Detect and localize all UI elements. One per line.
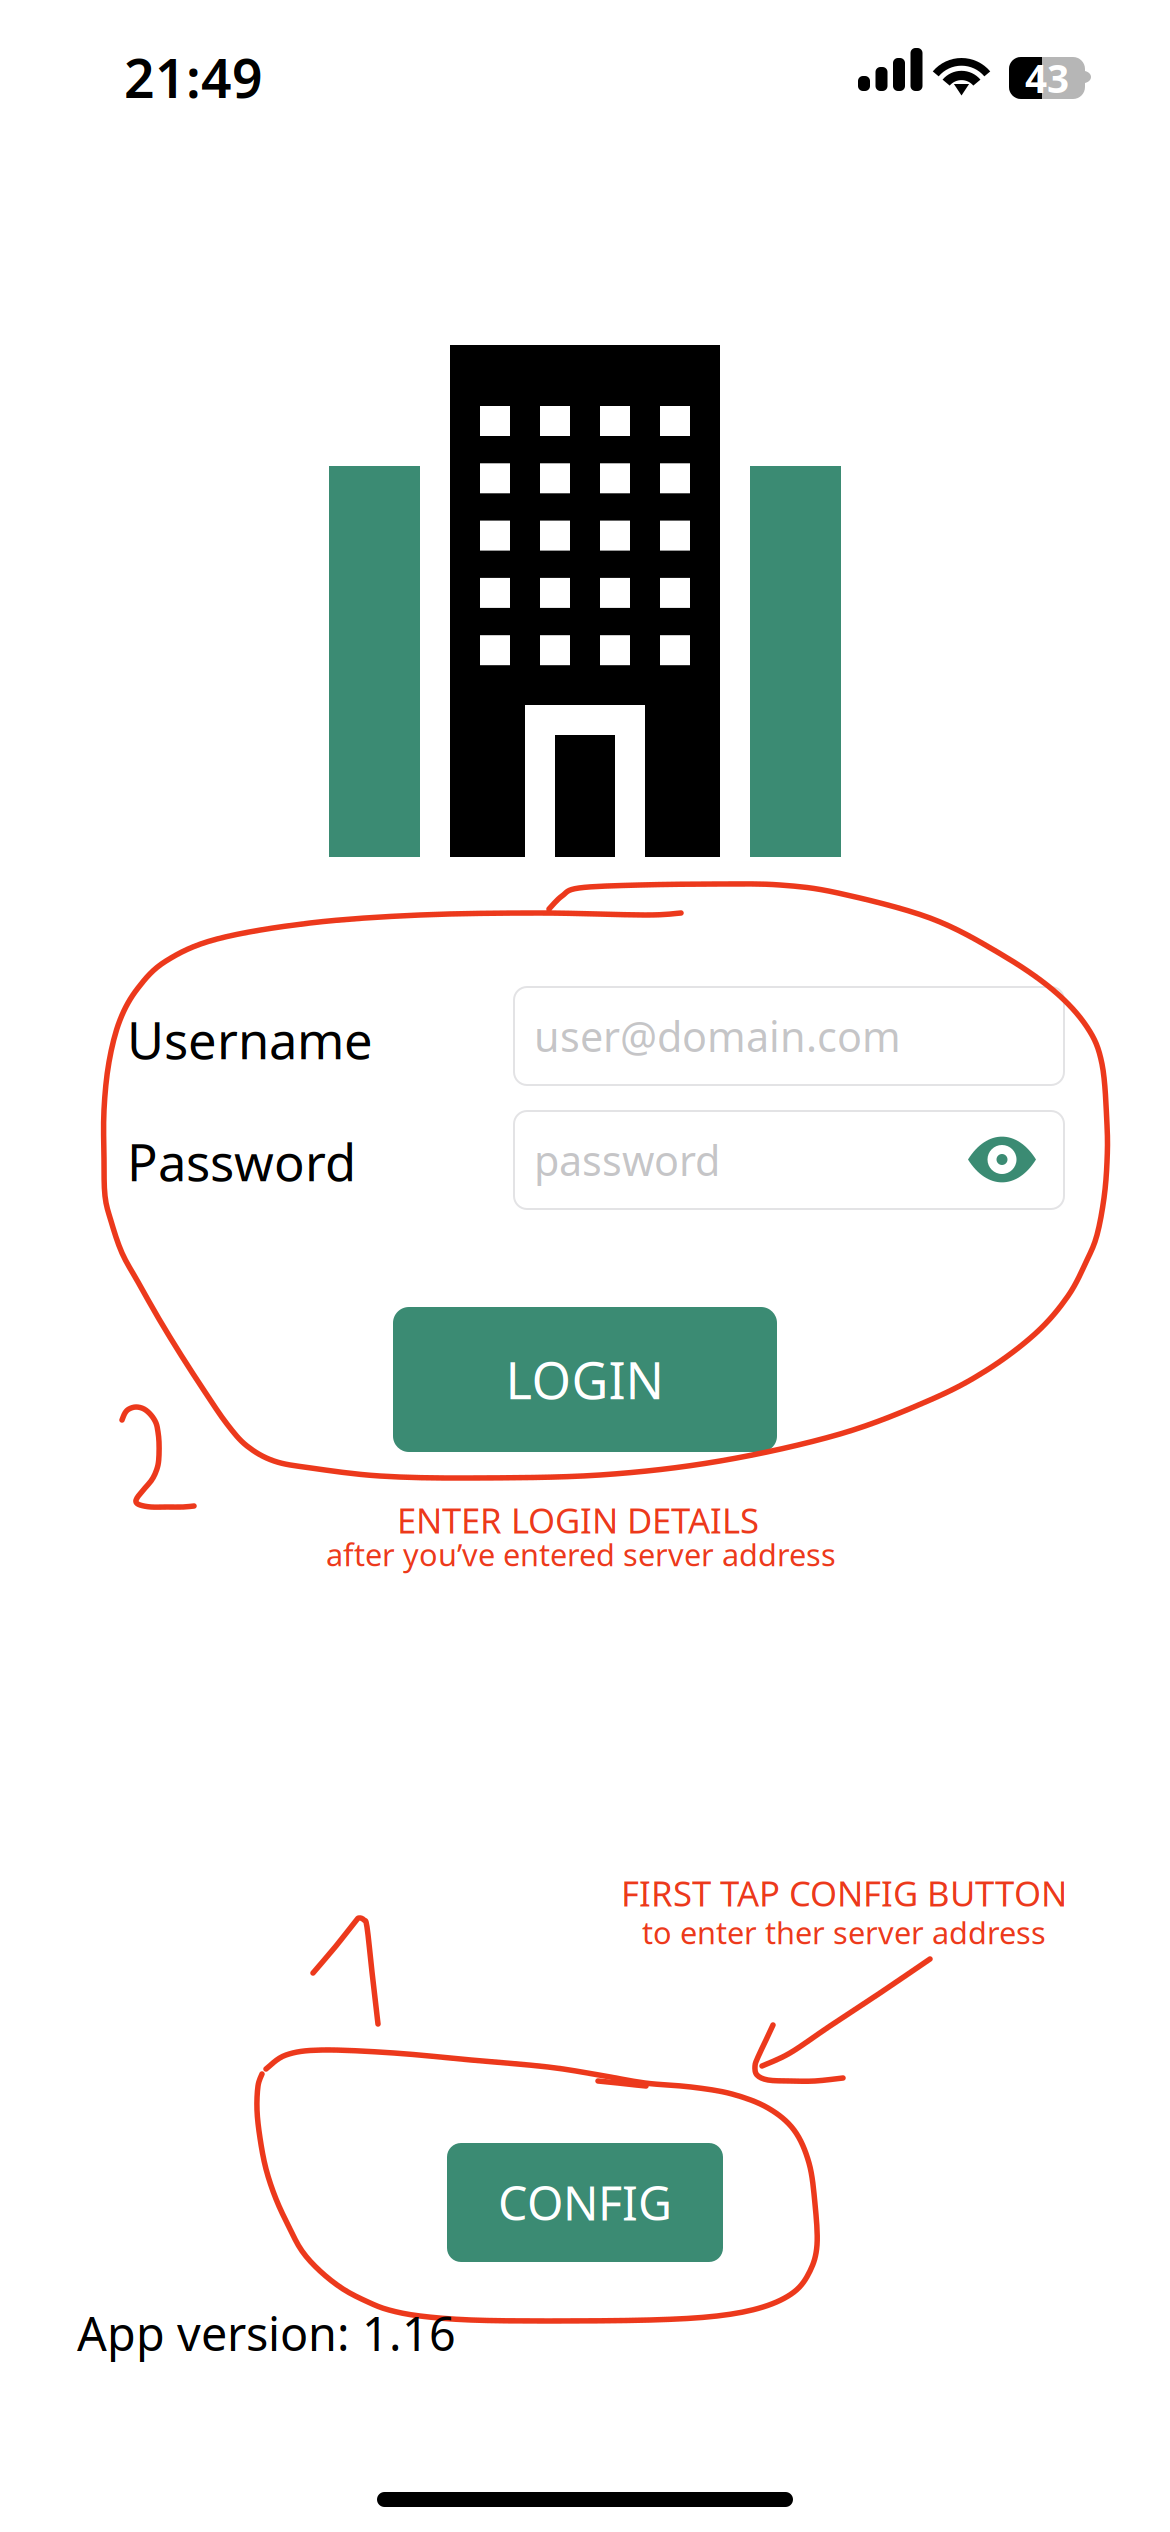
staticText: Username	[127, 1006, 373, 1046]
staticText: FIRST TAP CONFIG BUTTON	[621, 1870, 1067, 1902]
button[interactable]: Username field, user@domain.com	[514, 987, 1064, 1085]
staticText: ENTER LOGIN DETAILS	[397, 1497, 759, 1531]
staticText: CONFIG	[498, 2171, 672, 2233]
button[interactable]: CONFIG	[447, 2143, 723, 2262]
staticText: LOGIN	[505, 1346, 664, 1413]
staticText: after you’ve entered server address	[326, 1534, 836, 1568]
staticText: 43	[1025, 52, 1069, 104]
button[interactable]: LOGIN	[393, 1307, 777, 1452]
staticText: user@domain.com	[534, 1009, 901, 1063]
staticText: Password	[127, 1128, 356, 1168]
button[interactable]: Password field	[514, 1111, 1064, 1209]
staticText: App version: 1.16	[77, 2302, 456, 2352]
staticText: 21:49	[124, 42, 263, 88]
staticText: to enter ther server address	[642, 1912, 1046, 1944]
staticText: password	[534, 1133, 720, 1187]
button[interactable]: Show password	[968, 1138, 1036, 1181]
